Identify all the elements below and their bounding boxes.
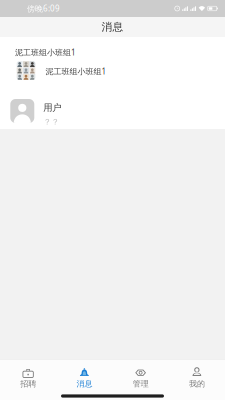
staticText: 招聘: [20, 379, 36, 389]
staticText: 用户: [43, 102, 61, 113]
button[interactable]: 我的: [169, 360, 225, 392]
staticText: 泥工班组小班组1: [15, 47, 76, 58]
staticText: 管理: [133, 379, 149, 389]
button[interactable]: 泥工班组小班组1: [0, 61, 225, 83]
button[interactable]: 用户: [0, 83, 225, 129]
staticText: 傍晚6:09: [27, 3, 60, 14]
staticText: 消息: [76, 379, 92, 389]
staticText: 泥工班组小班组1: [45, 66, 106, 77]
button[interactable]: 消息: [56, 360, 112, 392]
staticText: ？？: [43, 117, 59, 127]
button[interactable]: 管理: [112, 360, 169, 392]
button[interactable]: 泥工班组小班组1: [0, 37, 225, 61]
button[interactable]: 招聘: [0, 360, 56, 392]
staticText: 我的: [189, 379, 205, 389]
staticText: 消息: [101, 20, 123, 33]
